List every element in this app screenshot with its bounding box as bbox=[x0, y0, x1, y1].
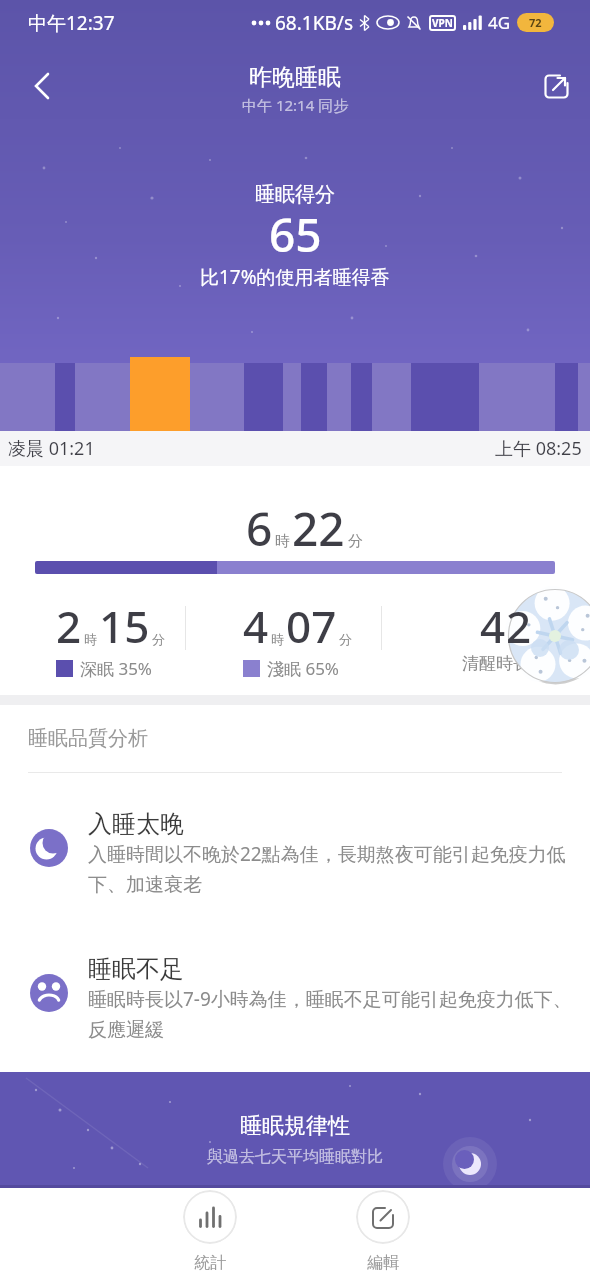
staticText: 時 bbox=[84, 631, 97, 647]
staticText: 深眠 35% bbox=[80, 657, 152, 680]
staticText: 時 bbox=[275, 532, 290, 551]
staticText: 15 bbox=[99, 596, 150, 656]
staticText: 分 bbox=[348, 532, 363, 551]
staticText: 睡眠時長以7-9小時為佳，睡眠不足可能引起免疫力低下、 反應遲緩 bbox=[88, 986, 572, 1042]
staticText: 4 bbox=[243, 596, 269, 656]
staticText: 與過去七天平均睡眠對比 bbox=[207, 1147, 383, 1167]
staticText: 2 bbox=[56, 596, 82, 656]
button[interactable]: 睡眠規律性 bbox=[0, 1072, 590, 1188]
staticText: 比17%的使用者睡得香 bbox=[200, 264, 390, 290]
button[interactable]: 統計 bbox=[178, 1190, 242, 1273]
staticText: 中午 12:14 同步 bbox=[242, 95, 349, 115]
staticText: 昨晚睡眠 bbox=[249, 63, 341, 92]
staticText: 入睡太晚 bbox=[88, 809, 184, 839]
staticText: 6 bbox=[246, 497, 273, 560]
staticText: 中午12:37 bbox=[28, 10, 115, 36]
staticText: 睡眠品質分析 bbox=[28, 726, 148, 751]
button[interactable]: 編輯 bbox=[351, 1190, 415, 1273]
staticText: 4 bbox=[480, 596, 506, 656]
staticText: 清醒時長 bbox=[462, 653, 530, 674]
staticText: 上午 08:25 bbox=[495, 436, 582, 461]
staticText: 淺眠 65% bbox=[267, 657, 339, 680]
button[interactable]: 睡眠不足 bbox=[0, 948, 590, 1088]
staticText: 22 bbox=[292, 497, 345, 560]
staticText: 68.1KB/s bbox=[275, 10, 353, 36]
staticText: 分 bbox=[339, 631, 352, 647]
staticText: 分 bbox=[152, 631, 165, 647]
staticText: 2 bbox=[506, 596, 532, 656]
staticText: 入睡時間以不晚於22點為佳，長期熬夜可能引起免疫力低 下、加速衰老 bbox=[88, 841, 566, 897]
staticText: 4G bbox=[488, 11, 511, 34]
button[interactable] bbox=[16, 60, 68, 112]
staticText: 時 bbox=[271, 631, 284, 647]
button[interactable]: 入睡太晚 bbox=[0, 803, 590, 943]
staticText: 72 bbox=[529, 15, 542, 30]
staticText: 睡眠規律性 bbox=[240, 1112, 350, 1140]
staticText: VPN bbox=[432, 16, 453, 30]
staticText: 編輯 bbox=[367, 1253, 399, 1273]
staticText: 睡眠得分 bbox=[255, 182, 335, 207]
staticText: 統計 bbox=[194, 1253, 226, 1273]
button[interactable] bbox=[530, 60, 582, 112]
staticText: 睡眠不足 bbox=[88, 954, 184, 984]
staticText: 65 bbox=[269, 203, 322, 266]
staticText: 凌晨 01:21 bbox=[8, 436, 95, 461]
staticText: 07 bbox=[286, 596, 337, 656]
